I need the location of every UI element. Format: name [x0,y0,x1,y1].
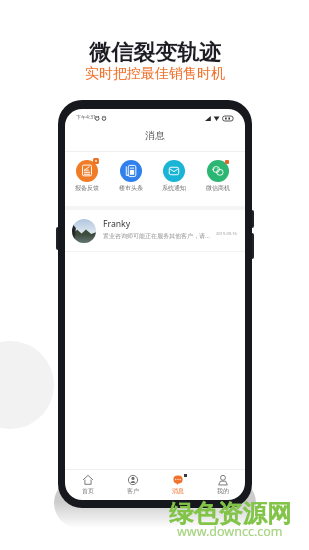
staticText: 下午4:31 [76,114,96,121]
button[interactable]: 微信商机 [198,160,238,196]
staticText: 楼市头条 [119,184,143,192]
button[interactable]: 报备反馈 [67,160,107,196]
staticText: 实时把控最佳销售时机 [85,65,225,83]
button[interactable]: Franky [65,210,245,251]
staticText: 我的 [217,487,229,495]
staticText: 首页 [82,487,94,495]
staticText: 消息 [172,487,184,495]
staticText: 消息 [145,129,165,142]
button[interactable]: 首页 [65,469,110,495]
staticText: 客户 [127,487,139,495]
staticText: www.downcc.com [177,523,283,540]
staticText: 2019-09-16 [216,231,237,236]
staticText: 微信商机 [206,184,230,192]
staticText: 置业咨询师可能正在服务其他客户，请... [103,232,210,240]
button[interactable]: 客户 [110,469,155,495]
staticText: 系统通知 [162,184,186,192]
staticText: 绿色资源网 [169,498,292,529]
staticText: 报备反馈 [75,184,99,192]
button[interactable]: 系统通知 [154,160,194,196]
button[interactable]: 消息 [155,469,200,495]
button[interactable]: 楼市头条 [111,160,151,196]
button[interactable]: 我的 [200,469,245,495]
staticText: Franky [103,218,131,230]
staticText: 微信裂变轨迹 [89,39,221,67]
